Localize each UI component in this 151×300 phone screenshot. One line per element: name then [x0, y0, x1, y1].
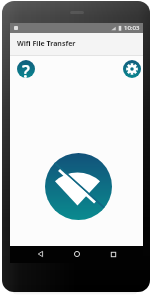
staticText: ?: [22, 60, 30, 78]
button[interactable]: Back: [34, 248, 46, 260]
button[interactable]: Recent apps: [107, 248, 119, 260]
staticText: 10:03: [124, 24, 140, 32]
button[interactable]: Help: [17, 60, 35, 78]
button[interactable]: Wi-Fi off: [45, 153, 112, 220]
staticText: Wifi File Transfer: [17, 39, 76, 49]
button[interactable]: Settings: [123, 60, 141, 78]
button[interactable]: Home: [71, 248, 83, 260]
